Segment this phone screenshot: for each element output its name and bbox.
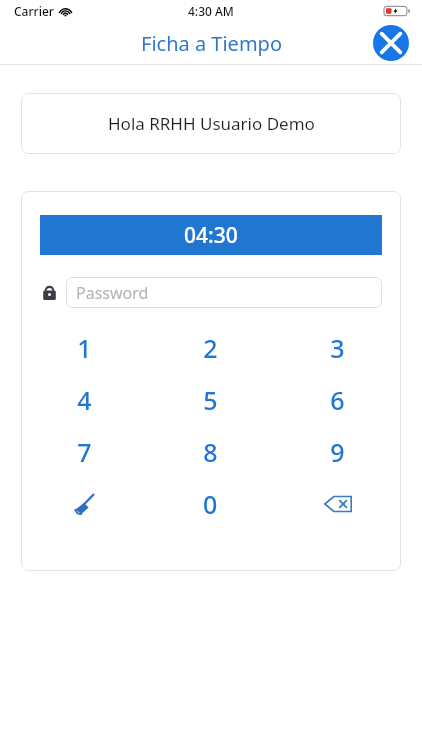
staticText: Password: [76, 282, 149, 304]
staticText: 9: [330, 435, 345, 469]
button[interactable]: Borrar: [274, 478, 401, 530]
staticText: Carrier: [14, 3, 54, 19]
button[interactable]: 1: [21, 322, 147, 374]
staticText: 1: [77, 331, 92, 365]
button[interactable]: 0: [147, 478, 274, 530]
button[interactable]: 9: [274, 426, 401, 478]
button[interactable]: 8: [147, 426, 274, 478]
button[interactable]: Hola RRHH Usuario Demo: [21, 93, 401, 154]
staticText: 0: [203, 487, 218, 521]
button[interactable]: 4: [21, 374, 147, 426]
button[interactable]: Cerrar sesión: [373, 25, 409, 61]
button[interactable]: Password: [66, 277, 382, 308]
staticText: 2: [203, 331, 218, 365]
staticText: Ficha a Tiempo: [141, 30, 282, 57]
staticText: 4: [77, 383, 92, 417]
button[interactable]: 2: [147, 322, 274, 374]
staticText: 5: [203, 383, 218, 417]
staticText: 6: [330, 383, 345, 417]
button[interactable]: 04:30: [40, 215, 382, 255]
button[interactable]: 5: [147, 374, 274, 426]
staticText: 04:30: [184, 221, 238, 250]
staticText: 4:30 AM: [188, 3, 234, 19]
button[interactable]: 7: [21, 426, 147, 478]
button[interactable]: 3: [274, 322, 401, 374]
staticText: 3: [330, 331, 345, 365]
button[interactable]: 6: [274, 374, 401, 426]
button[interactable]: Limpiar: [21, 478, 147, 530]
staticText: Hola RRHH Usuario Demo: [108, 112, 315, 135]
staticText: 8: [203, 435, 218, 469]
staticText: 7: [77, 435, 92, 469]
